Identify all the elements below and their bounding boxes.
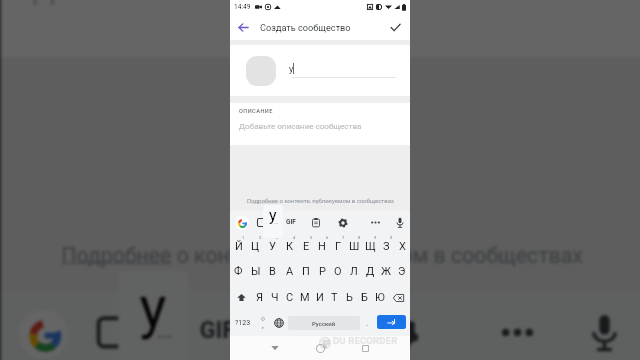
button[interactable]: Подробнее о контенте, публикуемом в сооб… [247,197,394,204]
button[interactable]: 9 [362,234,378,258]
staticText: GIF [200,316,235,345]
button[interactable]: Голосовой ввод [580,291,629,360]
button[interactable]: Ю [372,285,387,310]
button[interactable]: Ф [230,259,247,284]
staticText: 0 [390,235,393,240]
button[interactable]: Настройки [377,291,427,360]
button[interactable]: Подробнее о контенте, публикуемом в сооб… [61,242,583,267]
button[interactable]: Удалить [387,285,410,310]
button[interactable]: Стикеры [86,291,136,360]
button[interactable]: Ввод [377,315,406,329]
staticText: 2 [259,235,262,240]
button[interactable]: В [264,259,281,284]
staticText: Ж [381,265,391,278]
button[interactable]: Верхний регистр [230,285,252,310]
button[interactable]: ?123 [230,310,255,336]
button[interactable]: 3 [264,234,281,258]
staticText: Добавьте описание сообщества [239,121,362,130]
button[interactable]: Ещё [491,291,541,360]
staticText: У [269,240,276,253]
staticText: О [334,265,342,278]
staticText: Р [319,265,326,278]
button[interactable]: Т [327,285,342,310]
staticText: М [300,291,310,304]
staticText: 5 [310,235,313,240]
button[interactable]: Б [357,285,372,310]
staticText: 9 [374,235,377,240]
button[interactable]: Ж [378,259,394,284]
button[interactable]: Назад [230,14,256,40]
button[interactable]: М [297,285,312,310]
button[interactable]: Ы [247,259,264,284]
button[interactable]: Фото сообщества [246,56,276,86]
staticText: З [383,240,390,253]
staticText: К [286,240,294,253]
button[interactable]: Стикеры [254,211,268,234]
button[interactable]: Голосовой ввод [393,211,407,234]
staticText: 7 [342,235,345,240]
button[interactable]: Ещё [368,211,382,234]
button[interactable]: 6 [314,234,330,258]
button[interactable]: С [282,285,297,310]
button[interactable]: И [312,285,327,310]
button[interactable]: Google [235,216,249,230]
button[interactable]: Ч [267,285,282,310]
staticText: 8 [358,235,361,240]
staticText: Щ [365,240,376,253]
staticText: GIF [286,218,296,226]
staticText: Я [256,291,264,304]
button[interactable]: 8 [346,234,362,258]
staticText: у [289,63,294,74]
staticText: Й [235,240,243,253]
staticText: Ы [251,265,261,278]
staticText: 3 [276,235,279,240]
staticText: Ц [251,240,260,253]
button[interactable]: 0 [378,234,394,258]
button[interactable]: Главный экран [305,336,335,360]
button[interactable]: GIF [286,218,296,226]
button[interactable]: Р [314,259,330,284]
button[interactable]: П [298,259,314,284]
button[interactable]: Сменить язык [270,310,288,336]
staticText: 6 [326,235,329,240]
button[interactable]: Готово [382,14,408,40]
staticText: 1 [242,235,245,240]
staticText: Ь [346,291,353,304]
button[interactable]: Я [252,285,267,310]
staticText: И [316,291,324,304]
button[interactable]: Буфер обмена [281,291,331,360]
staticText: А [286,265,294,278]
staticText: Д [366,265,375,278]
button[interactable]: 5 [298,234,314,258]
staticText: Э [398,265,406,278]
button[interactable]: Ь [342,285,357,310]
button[interactable]: , [255,310,270,336]
button[interactable]: 1 [230,234,247,258]
button[interactable]: Х [394,234,410,258]
staticText: Ч [271,291,279,304]
staticText: у [139,274,168,341]
button[interactable]: Буфер обмена [309,211,323,234]
button[interactable]: 4 [281,234,298,258]
button[interactable]: А [281,259,298,284]
button[interactable]: 2 [247,234,264,258]
staticText: . [366,319,369,328]
staticText: Ш [349,240,360,253]
staticText: П [302,265,310,278]
button[interactable]: Недавние приложения [350,336,380,360]
staticText: 4 [293,235,296,240]
button[interactable]: GIF [200,316,235,345]
button[interactable]: 7 [330,234,346,258]
button[interactable]: Google [19,309,68,359]
staticText: DU RECORDER [333,335,398,346]
staticText: Ю [375,291,385,304]
staticText: , [262,321,264,330]
button[interactable]: Скрыть клавиатуру [260,336,290,360]
button[interactable]: Д [362,259,378,284]
button[interactable]: О [330,259,346,284]
button[interactable]: Л [346,259,362,284]
button[interactable]: Русский [288,316,360,330]
button[interactable]: Настройки [336,211,350,234]
button[interactable]: Э [394,259,410,284]
